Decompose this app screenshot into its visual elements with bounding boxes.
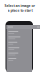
button[interactable] <box>8 41 32 46</box>
button[interactable] <box>8 52 32 56</box>
staticText: Select an image or <box>4 3 35 8</box>
button[interactable] <box>8 30 32 35</box>
button[interactable] <box>8 46 32 51</box>
button[interactable] <box>8 57 32 62</box>
staticText: a place to start <box>7 8 32 13</box>
button[interactable] <box>8 35 32 40</box>
